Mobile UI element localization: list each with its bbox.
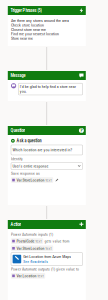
staticText: See flow details <box>23 259 48 264</box>
staticText: ? <box>80 127 83 134</box>
staticText: Store near me <box>11 36 33 41</box>
staticText: Power Automate inputs (1) <box>11 232 53 237</box>
staticText: Var.Location <box>16 273 36 278</box>
button[interactable]: Question <box>8 126 86 135</box>
staticText: Identify <box>11 157 23 161</box>
staticText: Are there any stores around the area <box>11 18 69 23</box>
staticText: text <box>38 273 44 278</box>
staticText: Question <box>10 128 25 133</box>
button[interactable]: Action <box>8 220 86 229</box>
staticText: PostalCode <box>16 239 34 243</box>
staticText: Find me your nearest location <box>11 32 59 36</box>
button[interactable]: Trigger Phrases (5) <box>8 6 86 15</box>
staticText: Get Location from Azure Maps <box>23 254 71 259</box>
staticText: Var.StoreLocation <box>16 178 44 182</box>
button[interactable]: Message <box>8 71 86 80</box>
staticText: gets value from <box>45 239 70 243</box>
staticText: Check store location <box>11 23 44 27</box>
button[interactable]: Edit variable <box>55 178 59 182</box>
staticText: Action <box>10 222 21 227</box>
staticText: Power Automate outputs (1) given value t… <box>11 267 79 271</box>
staticText: Ask a question <box>16 138 41 143</box>
staticText: Save response as <box>11 171 40 176</box>
staticText: text <box>46 178 52 182</box>
staticText: Closest store near me <box>11 27 46 32</box>
staticText: text <box>46 246 52 251</box>
staticText: Var.StoreLocation <box>16 246 44 251</box>
staticText: Which location are you interested in? <box>13 148 73 152</box>
staticText: I'd be glad to help find a store near yo… <box>20 84 76 94</box>
staticText: text <box>36 239 42 243</box>
staticText: User's entire response <box>13 164 49 168</box>
staticText: Trigger Phrases (5) <box>10 8 41 13</box>
staticText: Message <box>10 73 25 78</box>
